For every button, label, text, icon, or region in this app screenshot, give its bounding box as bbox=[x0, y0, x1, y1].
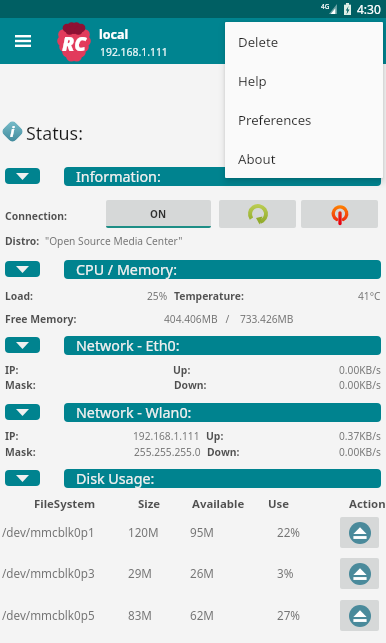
staticText: /dev/mmcblk0p3 bbox=[2, 565, 95, 581]
staticText: Free Memory: bbox=[5, 312, 77, 326]
button[interactable]: Collapse Information: bbox=[5, 168, 40, 184]
button[interactable]: Eject /dev/mmcblk0p5 bbox=[340, 600, 379, 631]
staticText: 192.168.1.111 bbox=[133, 429, 200, 443]
staticText: CPU / Memory: bbox=[76, 260, 177, 279]
button[interactable]: Network - Eth0: bbox=[64, 336, 381, 355]
button[interactable]: Preferences bbox=[225, 100, 383, 139]
button[interactable]: About bbox=[225, 139, 383, 178]
staticText: IP: bbox=[5, 429, 19, 443]
button[interactable]: Eject /dev/mmcblk0p1 bbox=[340, 517, 379, 548]
button[interactable]: Collapse Network - Wlan0: bbox=[5, 404, 40, 420]
staticText: Mask: bbox=[5, 445, 36, 459]
staticText: 0.37KB/s bbox=[339, 429, 381, 443]
button[interactable]: Network - Wlan0: bbox=[64, 403, 381, 422]
button[interactable]: CPU / Memory: bbox=[64, 260, 381, 279]
staticText: /dev/mmcblk0p5 bbox=[2, 607, 95, 623]
staticText: Down: bbox=[174, 378, 207, 392]
staticText: 41°C bbox=[358, 289, 381, 303]
staticText: 0.00KB/s bbox=[339, 445, 381, 459]
staticText: i bbox=[10, 121, 15, 141]
staticText: 4G bbox=[321, 2, 330, 11]
staticText: Delete bbox=[238, 33, 279, 51]
staticText: Down: bbox=[207, 445, 240, 459]
staticText: Status: bbox=[26, 121, 83, 145]
staticText: Network - Eth0: bbox=[76, 336, 180, 355]
staticText: 255.255.255.0 bbox=[134, 445, 201, 459]
button[interactable]: Shut down bbox=[301, 200, 378, 228]
button[interactable]: Disk Usage: bbox=[64, 469, 381, 488]
button[interactable]: Eject /dev/mmcblk0p3 bbox=[340, 558, 379, 589]
staticText: Use bbox=[268, 496, 290, 512]
staticText: 120M bbox=[128, 524, 159, 540]
staticText: /dev/mmcblk0p1 bbox=[2, 524, 95, 540]
staticText: Preferences bbox=[238, 111, 312, 129]
staticText: 62M bbox=[190, 607, 214, 623]
staticText: local bbox=[99, 26, 129, 43]
button[interactable]: Collapse Network - Eth0: bbox=[5, 337, 40, 353]
staticText: About bbox=[238, 150, 276, 168]
staticText: 22% bbox=[277, 524, 301, 540]
staticText: Information: bbox=[76, 167, 161, 186]
staticText: 4:30 bbox=[357, 1, 381, 17]
button[interactable]: Reboot bbox=[219, 200, 296, 228]
button[interactable]: Collapse CPU / Memory: bbox=[5, 261, 40, 277]
staticText: 29M bbox=[128, 565, 152, 581]
staticText: Temperature: bbox=[174, 289, 244, 303]
button[interactable]: Collapse Disk Usage: bbox=[5, 470, 40, 486]
staticText: 25% bbox=[147, 289, 168, 303]
button[interactable]: Information: bbox=[64, 167, 381, 186]
staticText: 95M bbox=[190, 524, 214, 540]
staticText: Up: bbox=[206, 429, 224, 443]
staticText: 27% bbox=[277, 607, 301, 623]
staticText: Mask: bbox=[5, 378, 36, 392]
staticText: 0.00KB/s bbox=[339, 363, 381, 377]
staticText: RC bbox=[62, 31, 87, 57]
staticText: Disk Usage: bbox=[76, 469, 155, 488]
staticText: 192.168.1.111 bbox=[100, 45, 168, 59]
staticText: Available bbox=[192, 496, 245, 512]
staticText: Load: bbox=[5, 289, 34, 303]
staticText: Action bbox=[349, 496, 386, 512]
staticText: Network - Wlan0: bbox=[76, 403, 192, 422]
button[interactable]: ON bbox=[106, 200, 211, 228]
staticText: ON bbox=[150, 207, 167, 221]
staticText: 404.406MB / 733.426MB bbox=[164, 312, 294, 326]
staticText: Distro: bbox=[5, 234, 40, 248]
staticText: FileSystem bbox=[34, 496, 96, 512]
staticText: 3% bbox=[277, 565, 294, 581]
staticText: Help bbox=[238, 72, 267, 90]
staticText: 0.00KB/s bbox=[339, 378, 381, 392]
staticText: Connection: bbox=[5, 209, 68, 223]
staticText: 26M bbox=[190, 565, 214, 581]
button[interactable]: Help bbox=[225, 61, 383, 100]
staticText: Size bbox=[138, 496, 161, 512]
button[interactable]: Delete bbox=[225, 22, 383, 61]
staticText: Up: bbox=[173, 363, 191, 377]
staticText: 83M bbox=[128, 607, 152, 623]
button[interactable]: Navigation menu bbox=[4, 22, 42, 60]
staticText: IP: bbox=[5, 363, 19, 377]
staticText: "Open Source Media Center" bbox=[45, 234, 183, 248]
